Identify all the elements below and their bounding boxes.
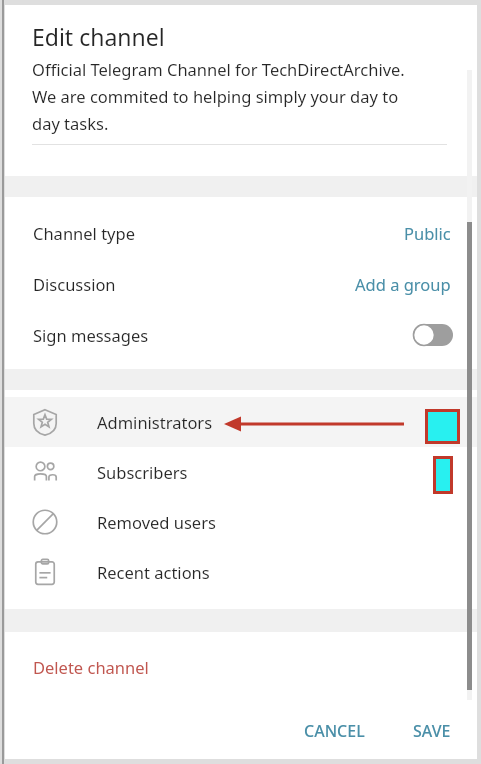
staticText: Discussion bbox=[33, 273, 116, 295]
button[interactable]: Administrators bbox=[5, 397, 477, 447]
staticText: Channel type bbox=[33, 222, 135, 244]
staticText: Subscribers bbox=[97, 461, 188, 483]
button[interactable]: SAVE bbox=[401, 712, 463, 750]
button[interactable]: Channel type bbox=[5, 207, 477, 258]
staticText: Delete channel bbox=[33, 656, 149, 678]
staticText: CANCEL bbox=[304, 720, 365, 742]
staticText: Administrators bbox=[97, 411, 213, 433]
button[interactable]: Subscribers bbox=[5, 447, 477, 497]
staticText: Removed users bbox=[97, 511, 216, 533]
button[interactable]: Discussion bbox=[5, 258, 477, 309]
button[interactable]: Sign messages bbox=[5, 309, 477, 360]
button[interactable]: Removed users bbox=[5, 497, 477, 547]
staticText: day tasks. bbox=[32, 112, 109, 134]
staticText: Edit channel bbox=[32, 21, 165, 52]
button[interactable]: CANCEL bbox=[292, 712, 377, 750]
staticText: Public bbox=[404, 222, 451, 244]
staticText: Sign messages bbox=[33, 324, 149, 346]
staticText: Recent actions bbox=[97, 561, 210, 583]
staticText: We are commited to helping simply your d… bbox=[32, 85, 399, 107]
staticText: SAVE bbox=[413, 720, 451, 742]
button[interactable]: Recent actions bbox=[5, 547, 477, 597]
staticText: Official Telegram Channel for TechDirect… bbox=[32, 58, 405, 80]
staticText: Add a group bbox=[355, 273, 451, 295]
other: Sign messages toggle bbox=[413, 324, 453, 346]
button[interactable]: Delete channel bbox=[5, 632, 477, 702]
